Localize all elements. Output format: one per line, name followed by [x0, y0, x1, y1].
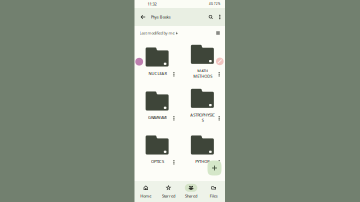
- staticText: Last modified by me: [139, 30, 174, 36]
- button[interactable]: Search: [206, 10, 216, 24]
- button[interactable]: More options: [216, 10, 224, 24]
- button[interactable]: ASTROPHYSIC S: [180, 84, 225, 128]
- button[interactable]: GRAVWAVE: [134, 84, 180, 128]
- button[interactable]: NUCLEAR: [134, 40, 180, 84]
- staticText: 11:32: [147, 1, 156, 7]
- button[interactable]: PYTHON: [180, 128, 225, 172]
- button[interactable]: Home: [134, 181, 157, 202]
- button[interactable]: MATH METHODS: [180, 40, 225, 84]
- button[interactable]: Last modified by me: [139, 27, 178, 39]
- staticText: PYTHON: [195, 159, 210, 164]
- staticText: Home: [140, 193, 151, 199]
- button[interactable]: Files: [202, 181, 225, 202]
- staticText: Starred: [162, 193, 175, 199]
- staticText: GRAVWAVE: [148, 115, 167, 120]
- staticText: Shared: [185, 193, 197, 199]
- button[interactable]: Starred: [157, 181, 180, 202]
- button[interactable]: Shared: [180, 181, 202, 202]
- button[interactable]: Create new: [207, 160, 221, 175]
- button[interactable]: OPTICS: [134, 128, 180, 172]
- staticText: Phys Books: [151, 14, 171, 20]
- button[interactable]: Change view: [213, 27, 222, 39]
- staticText: MATH METHODS: [193, 68, 212, 79]
- staticText: 72%: [214, 2, 220, 6]
- staticText: ASTROPHYSIC S: [190, 112, 215, 123]
- staticText: 4G: [209, 2, 213, 6]
- staticText: NUCLEAR: [148, 71, 166, 76]
- staticText: Files: [210, 193, 218, 199]
- button[interactable]: Back: [138, 10, 148, 24]
- staticText: OPTICS: [151, 159, 164, 164]
